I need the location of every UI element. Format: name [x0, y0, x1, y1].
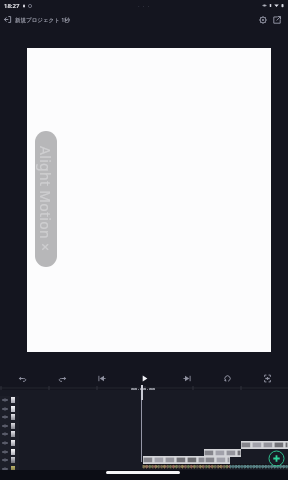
- button[interactable]: Settings: [256, 13, 270, 27]
- button[interactable]: [1, 405, 19, 413]
- button[interactable]: Export: [270, 13, 284, 27]
- staticText: Alight Motion ×: [36, 146, 55, 252]
- button[interactable]: [1, 465, 19, 473]
- button[interactable]: Fit to screen: [258, 369, 276, 387]
- button[interactable]: [1, 396, 19, 404]
- button[interactable]: [1, 448, 19, 456]
- staticText: 00:00:00: [131, 387, 156, 394]
- button[interactable]: Play: [135, 369, 153, 387]
- button[interactable]: [241, 441, 288, 449]
- button[interactable]: Back: [1, 13, 14, 26]
- staticText: 新規プロジェクト 1秒: [15, 16, 70, 24]
- staticText: 18:27: [4, 2, 20, 10]
- button[interactable]: Skip to start: [92, 369, 110, 387]
- button[interactable]: [1, 413, 19, 421]
- button[interactable]: Add layer: [267, 449, 286, 468]
- staticText: · · ·: [138, 2, 150, 10]
- button[interactable]: [205, 456, 230, 464]
- button[interactable]: [143, 456, 205, 464]
- button[interactable]: Loop: [218, 369, 236, 387]
- button[interactable]: Skip to end: [178, 369, 196, 387]
- button[interactable]: [1, 439, 19, 447]
- button[interactable]: [1, 422, 19, 430]
- button[interactable]: [1, 430, 19, 438]
- button[interactable]: Redo: [53, 369, 71, 387]
- button[interactable]: [1, 456, 19, 464]
- button[interactable]: Undo: [13, 369, 31, 387]
- button[interactable]: [204, 449, 241, 457]
